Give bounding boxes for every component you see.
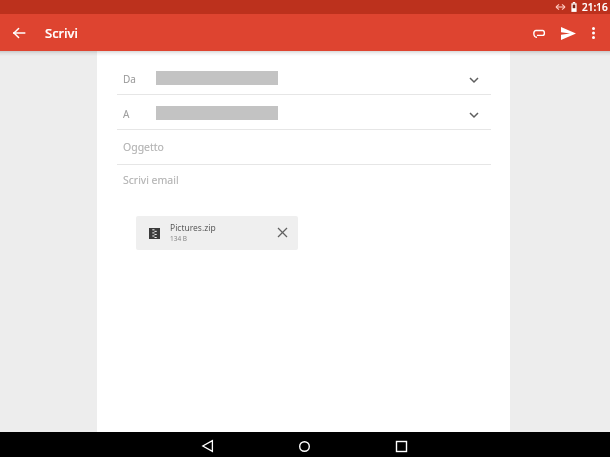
staticText: Scrivi xyxy=(45,24,78,42)
button[interactable]: Oggetto xyxy=(97,131,510,164)
other: Expand recipients xyxy=(466,107,482,123)
staticText: Oggetto xyxy=(123,140,164,154)
button[interactable]: Da xyxy=(97,61,510,95)
button[interactable]: Send xyxy=(554,19,582,47)
other: Expand recipients xyxy=(466,72,482,88)
button[interactable]: Home xyxy=(292,434,316,457)
staticText: A xyxy=(123,107,130,121)
button[interactable]: Remove attachment xyxy=(273,223,291,241)
button[interactable]: Recent apps xyxy=(389,434,413,457)
button[interactable]: Attach file xyxy=(526,20,552,46)
staticText: Scrivi email xyxy=(123,173,179,187)
button[interactable]: Back xyxy=(7,21,31,45)
button[interactable]: A xyxy=(97,96,510,130)
staticText: 134 B xyxy=(170,234,188,243)
button[interactable]: Back xyxy=(195,434,219,457)
staticText: 21:16 xyxy=(582,0,608,14)
button[interactable]: More options xyxy=(580,20,606,46)
staticText: Da xyxy=(123,72,136,86)
button[interactable]: Pictures.zip xyxy=(136,216,298,250)
staticText: Pictures.zip xyxy=(170,222,216,234)
